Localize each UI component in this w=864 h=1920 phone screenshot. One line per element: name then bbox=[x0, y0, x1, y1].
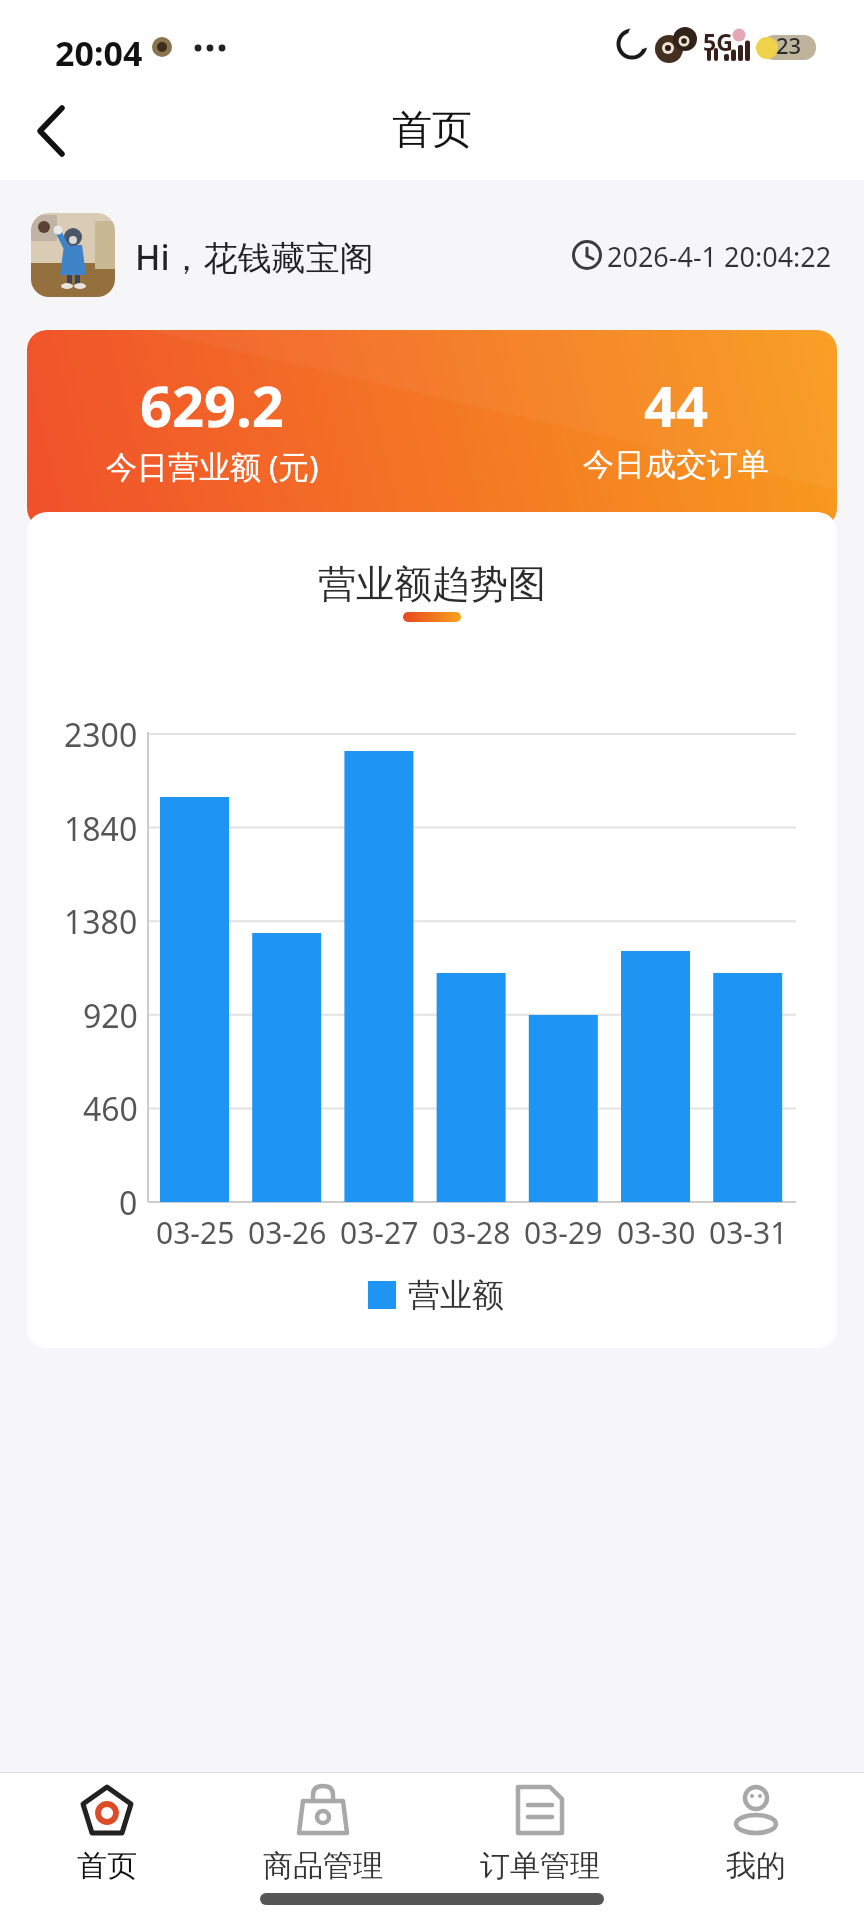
staticText: 03-25 bbox=[156, 1212, 235, 1253]
button[interactable]: 首页 bbox=[27, 1785, 187, 1885]
staticText: 首页 bbox=[77, 1847, 137, 1885]
staticText: 2300 bbox=[64, 713, 138, 757]
staticText: 订单管理 bbox=[480, 1847, 600, 1885]
staticText: 44 bbox=[644, 367, 709, 443]
staticText: 我的 bbox=[726, 1847, 786, 1885]
staticText: 460 bbox=[83, 1087, 138, 1131]
button[interactable]: 订单管理 bbox=[460, 1785, 620, 1885]
button[interactable]: 商品管理 bbox=[243, 1785, 403, 1885]
staticText: 今日营业额 (元) bbox=[106, 445, 319, 487]
staticText: 商品管理 bbox=[263, 1847, 383, 1885]
staticText: 营业额趋势图 bbox=[318, 560, 546, 608]
button[interactable]: 我的 bbox=[676, 1785, 836, 1885]
staticText: 5G bbox=[703, 26, 733, 57]
staticText: 营业额 bbox=[408, 1275, 504, 1315]
staticText: 920 bbox=[83, 994, 138, 1038]
button[interactable]: 629.2 bbox=[27, 330, 837, 528]
staticText: 20:04 bbox=[55, 30, 143, 76]
staticText: 629.2 bbox=[140, 367, 284, 443]
staticText: 03-26 bbox=[248, 1212, 327, 1253]
button[interactable] bbox=[38, 106, 68, 156]
staticText: 03-27 bbox=[340, 1212, 419, 1253]
staticText: 今日成交订单 bbox=[583, 445, 769, 484]
staticText: 23 bbox=[776, 30, 802, 60]
staticText: Hi，花钱藏宝阁 bbox=[135, 234, 374, 280]
staticText: 03-28 bbox=[432, 1212, 511, 1253]
staticText: 1840 bbox=[64, 807, 138, 851]
staticText: 首页 bbox=[392, 104, 472, 154]
staticText: 03-30 bbox=[617, 1212, 696, 1253]
staticText: 0 bbox=[119, 1181, 138, 1225]
staticText: 03-29 bbox=[524, 1212, 603, 1253]
staticText: 1380 bbox=[64, 900, 138, 944]
staticText: 03-31 bbox=[709, 1212, 788, 1253]
staticText: 2026-4-1 20:04:22 bbox=[607, 238, 832, 275]
